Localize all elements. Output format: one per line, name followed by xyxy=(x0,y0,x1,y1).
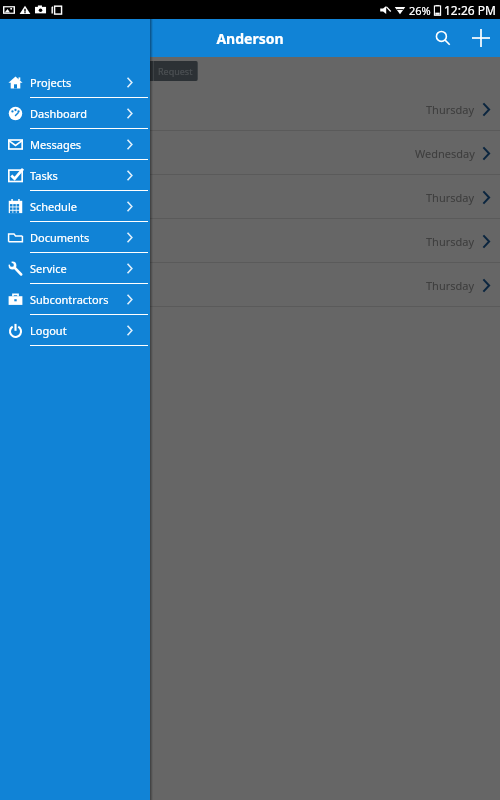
button[interactable]: Subcontractors xyxy=(0,284,150,314)
button[interactable]: Schedule xyxy=(0,191,150,221)
staticText: 12:26 PM xyxy=(444,2,496,18)
staticText: Documents xyxy=(30,230,125,245)
staticText: Anderson xyxy=(216,29,284,48)
button[interactable]: Service xyxy=(0,253,150,283)
staticText: Messages xyxy=(30,137,125,152)
button[interactable]: Wednesday xyxy=(0,131,500,175)
staticText: Thursday xyxy=(426,234,475,249)
button[interactable]: Documents xyxy=(0,222,150,252)
staticText: Thursday xyxy=(426,190,475,205)
staticText: Subcontractors xyxy=(30,292,125,307)
button[interactable]: Thursday xyxy=(0,175,500,219)
staticText: Tasks xyxy=(30,168,125,183)
button[interactable]: Thursday xyxy=(0,263,500,307)
button[interactable]: Dashboard xyxy=(0,98,150,128)
button[interactable]: Search xyxy=(424,19,462,57)
button[interactable]: Tasks xyxy=(0,160,150,190)
button[interactable]: Thursday xyxy=(0,87,500,131)
button[interactable]: Add xyxy=(462,19,500,57)
button[interactable]: Request xyxy=(154,61,197,81)
button[interactable]: Thursday xyxy=(0,219,500,263)
button[interactable]: Logout xyxy=(0,315,150,345)
staticText: Logout xyxy=(30,323,125,338)
staticText: Projects xyxy=(30,75,125,90)
button[interactable]: Open xyxy=(27,61,59,81)
button[interactable]: Closed xyxy=(116,61,153,81)
staticText: Service xyxy=(30,261,125,276)
staticText: Thursday xyxy=(426,278,475,293)
button[interactable]: Completed xyxy=(60,61,115,81)
staticText: Schedule xyxy=(30,199,125,214)
staticText: Wednesday xyxy=(415,146,475,161)
staticText: Thursday xyxy=(426,102,475,117)
button[interactable]: Projects xyxy=(0,67,150,97)
staticText: Dashboard xyxy=(30,106,125,121)
button[interactable]: Messages xyxy=(0,129,150,159)
staticText: Request xyxy=(158,65,193,77)
staticText: 26% xyxy=(409,3,431,18)
